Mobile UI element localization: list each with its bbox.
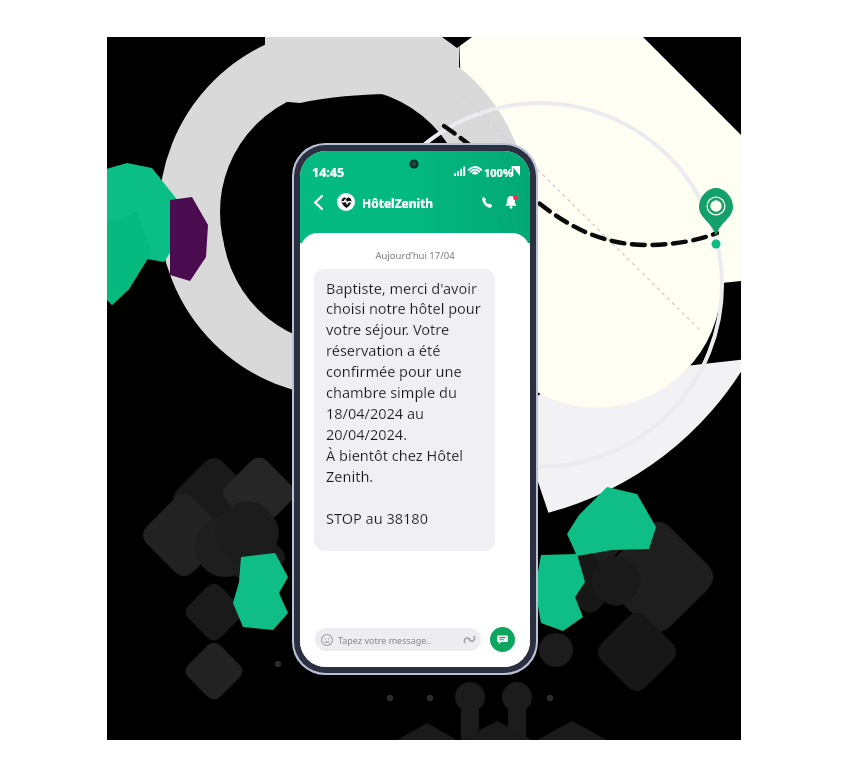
button[interactable]: Tapez votre message..	[315, 628, 481, 651]
button[interactable]: Notifications	[498, 189, 524, 215]
staticText: 100%	[484, 165, 513, 180]
button[interactable]: Call	[474, 189, 500, 215]
staticText: Tapez votre message..	[338, 634, 432, 646]
staticText: Baptiste, merci d'avoir choisi notre hôt…	[326, 278, 486, 529]
staticText: Aujourd’hui 17/04	[300, 249, 530, 262]
button[interactable]: Back	[306, 191, 332, 217]
button[interactable]: Send message	[490, 627, 515, 652]
staticText: HôtelZenith	[362, 195, 434, 211]
staticText: 14:45	[312, 164, 345, 181]
